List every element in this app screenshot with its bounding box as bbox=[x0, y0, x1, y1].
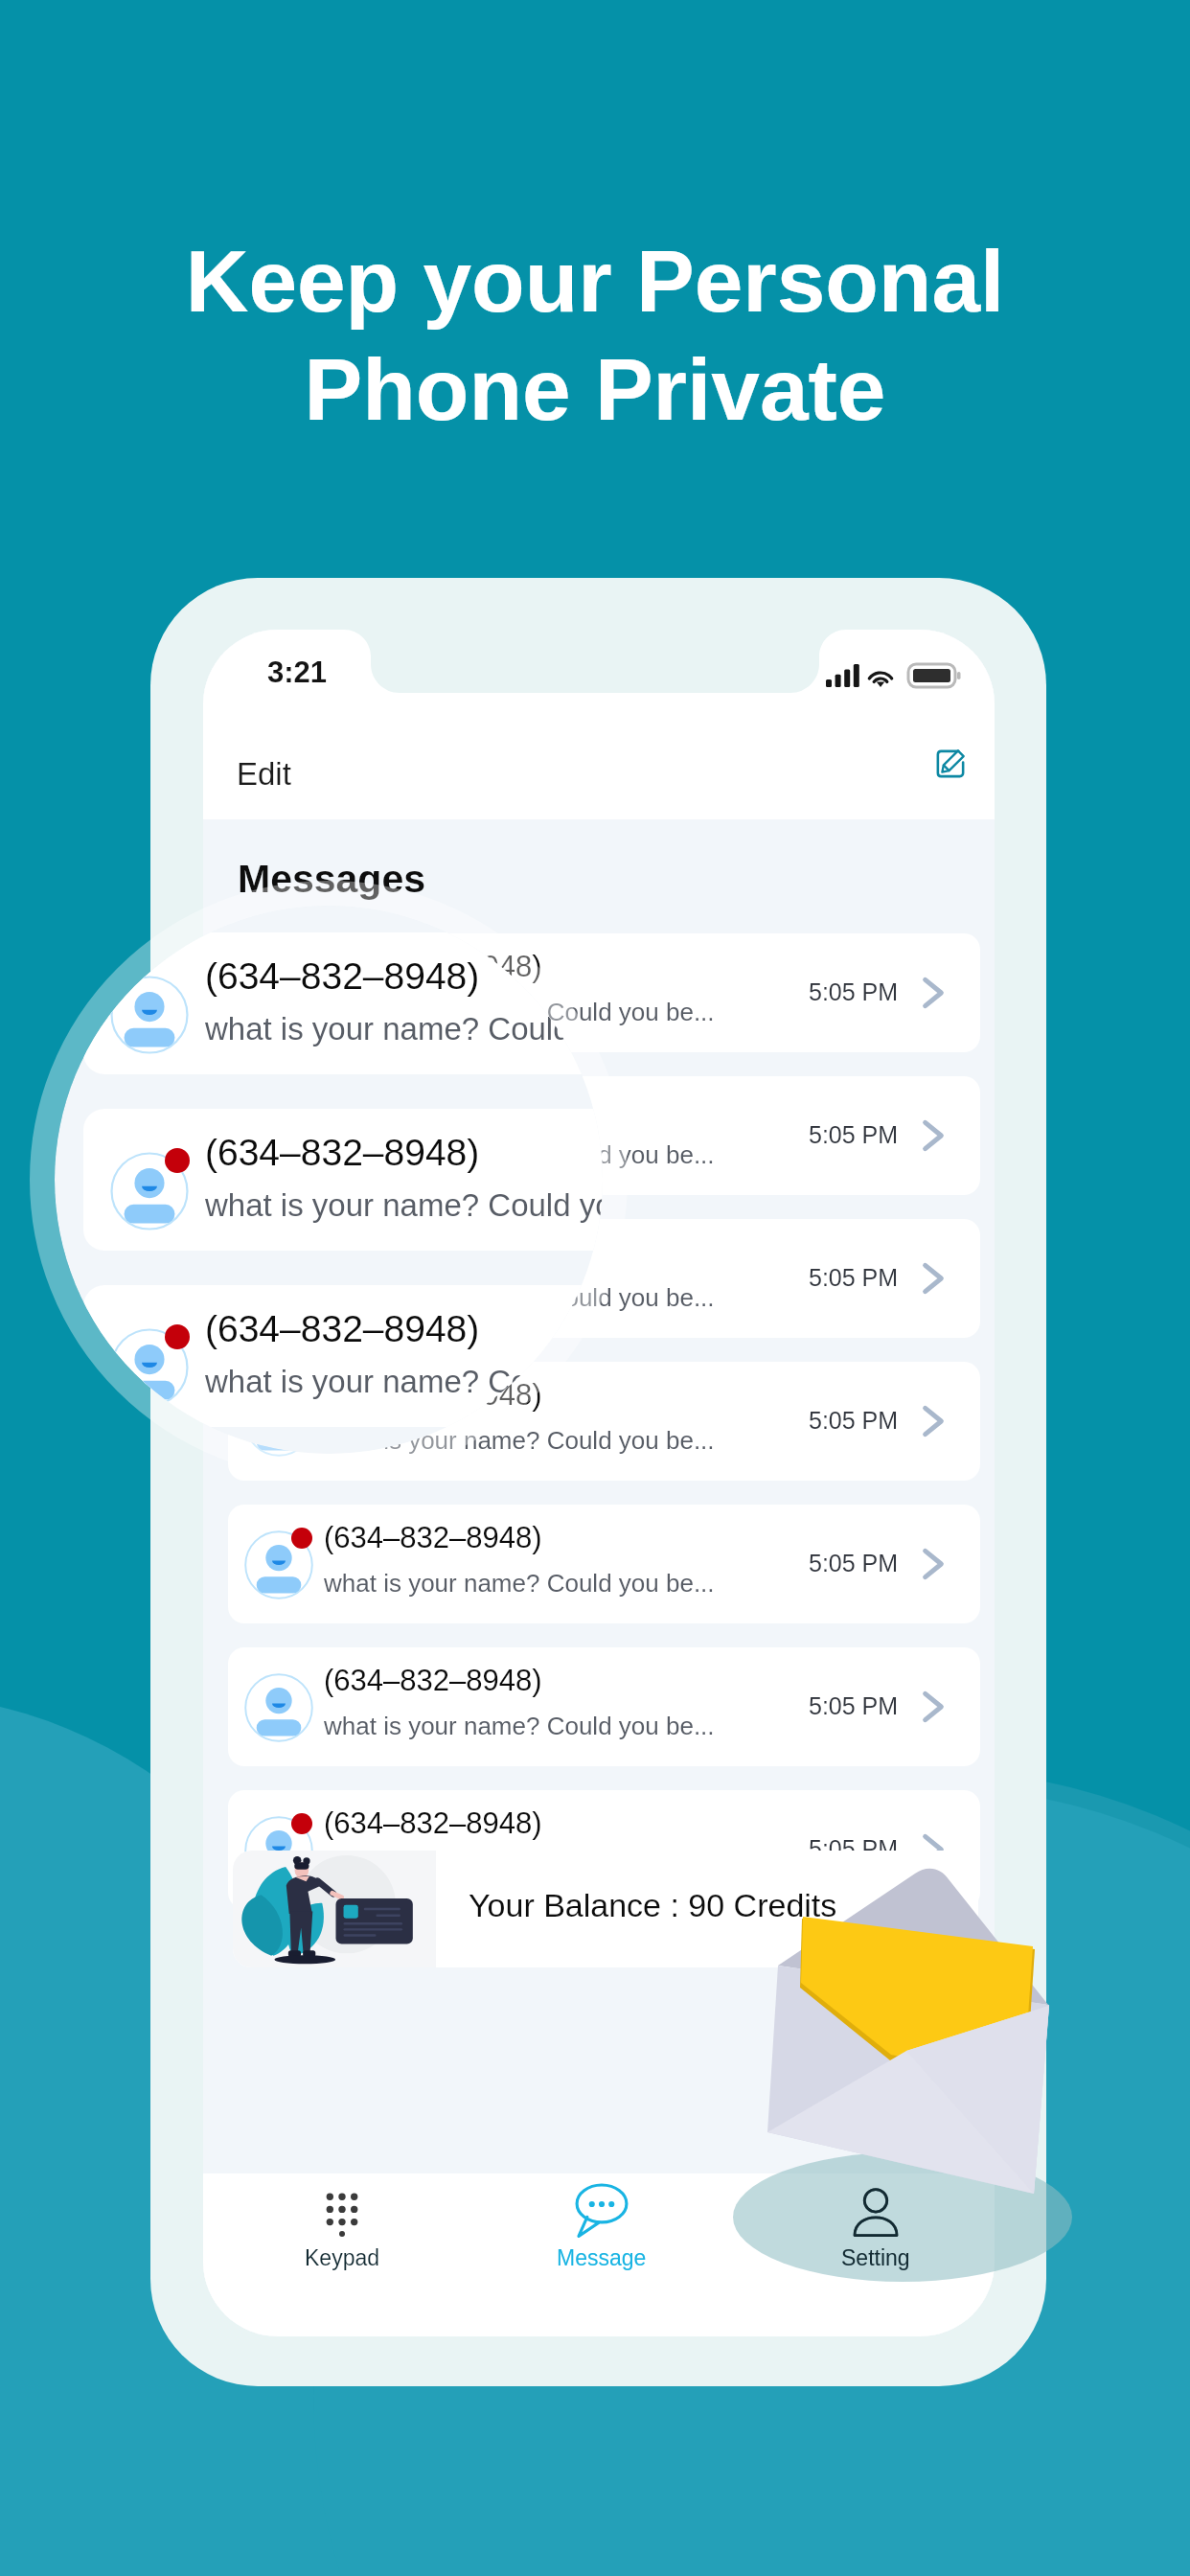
button[interactable]: Keypad bbox=[256, 2173, 428, 2336]
staticText: what is your name? Could you be... bbox=[205, 1011, 603, 1046]
staticText: 5:05 PM bbox=[809, 1835, 899, 1862]
staticText: what is your name? Could you be... bbox=[324, 1140, 715, 1168]
staticText: 5:05 PM bbox=[809, 1121, 899, 1148]
button[interactable]: (634–832–8948) bbox=[228, 1647, 980, 1766]
staticText: what is your name? Could you be... bbox=[324, 1569, 715, 1597]
staticText: Message bbox=[557, 2245, 647, 2270]
staticText: what is your name? Could you be... bbox=[205, 1187, 603, 1223]
button[interactable]: Setting bbox=[790, 2173, 962, 2336]
staticText: (634–832–8948) bbox=[324, 1664, 542, 1697]
staticText: what is your name? Could you be... bbox=[324, 1426, 715, 1454]
button[interactable]: (634–832–8948) bbox=[228, 1362, 980, 1481]
staticText: what is your name? Could you be... bbox=[324, 1283, 715, 1311]
staticText: 5:05 PM bbox=[809, 1407, 899, 1434]
staticText: (634–832–8948) bbox=[324, 1092, 542, 1126]
button[interactable]: Compose new message bbox=[933, 747, 968, 781]
staticText: (634–832–8948) bbox=[324, 1806, 542, 1840]
button[interactable]: (634–832–8948) bbox=[228, 933, 980, 1052]
staticText: (634–832–8948) bbox=[324, 1378, 542, 1412]
staticText: (634–832–8948) bbox=[205, 1132, 480, 1174]
button[interactable]: (634–832–8948) bbox=[228, 1790, 980, 1909]
staticText: 3:21 bbox=[267, 655, 328, 689]
staticText: 5:05 PM bbox=[809, 1264, 899, 1291]
staticText: what is your name? Could you be... bbox=[324, 1854, 715, 1882]
staticText: 5:05 PM bbox=[809, 1550, 899, 1576]
button[interactable]: Edit bbox=[229, 748, 299, 799]
staticText: 5:05 PM bbox=[809, 978, 899, 1005]
staticText: (634–832–8948) bbox=[324, 1235, 542, 1269]
button[interactable]: (634–832–8948) bbox=[228, 1219, 980, 1338]
staticText: (634–832–8948) bbox=[324, 1521, 542, 1554]
button[interactable]: (634–832–8948) bbox=[228, 1076, 980, 1195]
button[interactable]: Message bbox=[515, 2173, 688, 2336]
staticText: what is your name? Could you be... bbox=[324, 1712, 715, 1739]
staticText: (634–832–8948) bbox=[205, 1308, 480, 1350]
staticText: what is your name? Could you be... bbox=[324, 998, 715, 1025]
staticText: (634–832–8948) bbox=[324, 950, 542, 983]
staticText: what is your name? Could you be... bbox=[205, 1364, 603, 1399]
staticText: (634–832–8948) bbox=[205, 955, 480, 998]
staticText: Setting bbox=[841, 2245, 910, 2270]
button[interactable]: (634–832–8948) bbox=[228, 1505, 980, 1623]
staticText: Keep your Personal Phone Private bbox=[0, 233, 1190, 438]
staticText: Keypad bbox=[305, 2245, 380, 2270]
staticText: Setting bbox=[841, 2245, 910, 2270]
button[interactable]: Setting bbox=[790, 2173, 962, 2336]
staticText: Messages bbox=[238, 857, 426, 901]
staticText: 5:05 PM bbox=[809, 1692, 899, 1719]
staticText: Your Balance : 90 Credits bbox=[469, 1887, 837, 1923]
button[interactable]: Your Balance : 90 Credits bbox=[233, 1851, 978, 1967]
